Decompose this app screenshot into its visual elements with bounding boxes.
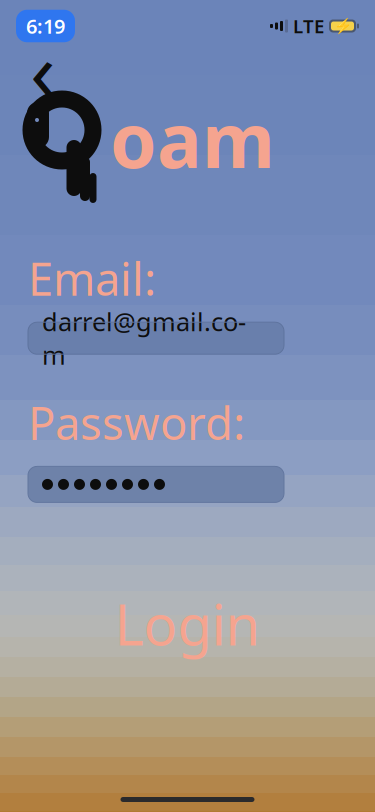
staticText: oam <box>110 89 275 189</box>
button[interactable]: Login <box>0 581 375 667</box>
staticText: Password: <box>28 392 245 452</box>
button[interactable]: darrel@gmail.com <box>28 322 284 354</box>
button[interactable] <box>28 466 284 502</box>
staticText: Email: <box>28 248 156 308</box>
staticText: darrel@gmail.com <box>42 305 246 372</box>
staticText: LTE <box>293 14 324 38</box>
staticText: 6:19 <box>26 13 65 39</box>
staticText: ‹ <box>30 14 56 124</box>
button[interactable]: Back <box>20 46 66 92</box>
staticText: ⚡ <box>333 18 351 34</box>
staticText: Login <box>114 587 260 661</box>
